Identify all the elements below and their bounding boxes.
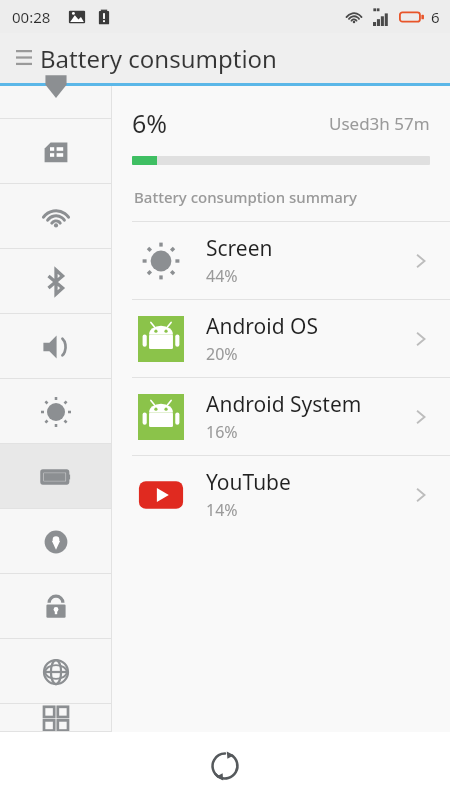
staticText: Android OS [206,312,318,341]
button[interactable]: Wi-Fi [0,184,111,249]
button[interactable]: Display [0,379,111,444]
button[interactable]: Bluetooth [0,249,111,314]
button[interactable]: YouTube [112,456,450,533]
staticText: 44% [206,265,238,287]
staticText: Used3h 57m [329,112,430,135]
button[interactable]: Security partial [0,86,111,119]
button[interactable]: Sound [0,314,111,379]
button[interactable]: Android OS [112,300,450,377]
button[interactable]: Refresh [198,739,252,793]
staticText: Screen [206,234,273,263]
staticText: 16% [206,421,238,443]
button[interactable]: Lock [0,574,111,639]
button[interactable]: Android System [112,378,450,455]
button[interactable]: Apps [0,704,111,732]
button[interactable]: Language [0,639,111,704]
button[interactable]: Battery [0,444,111,509]
staticText: Battery consumption [40,42,277,75]
button[interactable]: SIM cards [0,119,111,184]
staticText: YouTube [206,468,291,497]
staticText: Battery consumption summary [134,187,358,207]
staticText: Android System [206,390,362,419]
button[interactable]: Menu [6,40,42,76]
button[interactable]: Screen [112,222,450,299]
button[interactable]: Location [0,509,111,574]
staticText: 00:28 [12,7,51,27]
staticText: 20% [206,343,238,365]
staticText: 14% [206,499,238,521]
staticText: 6 [431,7,440,27]
staticText: 6% [132,106,168,140]
